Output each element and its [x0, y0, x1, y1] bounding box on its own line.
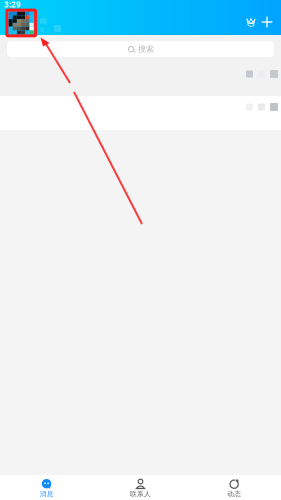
button[interactable]: 联系人	[94, 475, 187, 500]
button[interactable]: 消息	[0, 475, 94, 500]
staticText: 搜索	[138, 44, 154, 54]
staticText: 3:29	[4, 0, 21, 10]
staticText: 消息	[40, 490, 54, 498]
button[interactable]: Profile	[8, 11, 34, 34]
button[interactable]: 搜索	[7, 41, 274, 57]
button[interactable]	[0, 57, 281, 96]
button[interactable]: 动态	[187, 475, 281, 500]
staticText: 联系人	[130, 490, 151, 498]
button[interactable]: Add	[261, 16, 273, 28]
staticText: 动态	[227, 490, 241, 498]
button[interactable]: QQ Member	[246, 18, 256, 27]
button[interactable]	[0, 96, 281, 130]
